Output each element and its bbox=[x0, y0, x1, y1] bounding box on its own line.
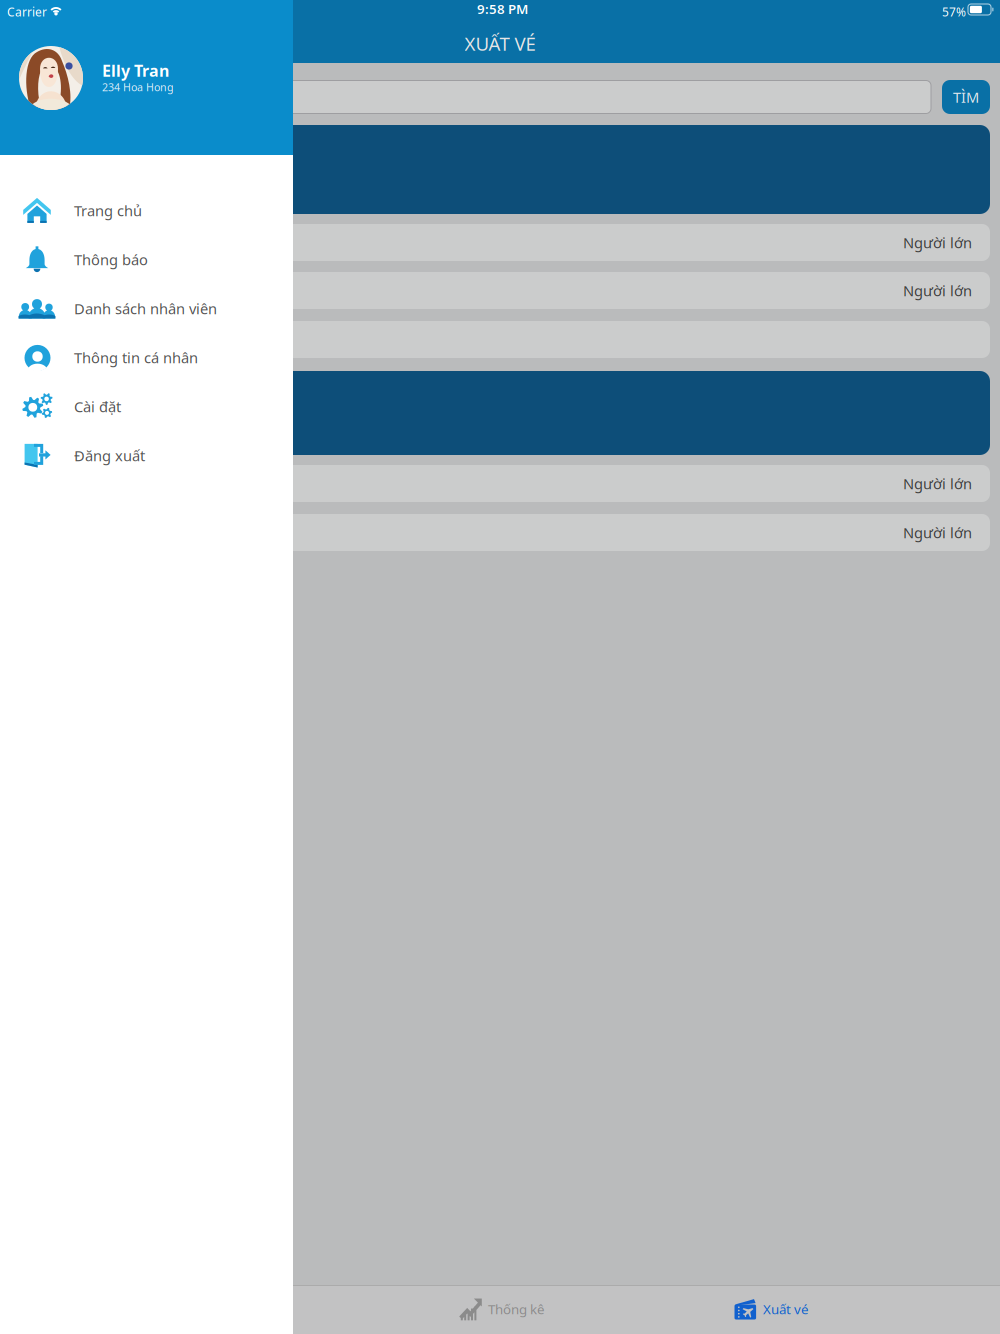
staticText: 57% bbox=[942, 4, 966, 20]
staticText: Người lớn bbox=[903, 281, 972, 300]
staticText: Đăng xuất bbox=[74, 446, 145, 465]
button[interactable]: Thông báo bbox=[0, 235, 293, 284]
staticText: Elly Tran bbox=[102, 60, 169, 81]
button[interactable]: Cài đặt bbox=[0, 382, 293, 431]
button[interactable]: Người lớn bbox=[10, 272, 990, 309]
staticText: 9:58 PM bbox=[477, 0, 528, 18]
button[interactable]: TÌM bbox=[942, 80, 990, 114]
staticText: Thông tin cá nhân bbox=[74, 348, 198, 367]
staticText: Thông báo bbox=[74, 250, 148, 269]
button[interactable]: Người lớn bbox=[10, 465, 990, 502]
staticText: XUẤT VÉ bbox=[464, 31, 535, 56]
button[interactable]: Người lớn bbox=[10, 514, 990, 551]
button[interactable]: Danh sách nhân viên bbox=[0, 284, 293, 333]
staticText: 234 Hoa Hong bbox=[102, 80, 174, 94]
staticText: Thống kê bbox=[488, 1300, 545, 1318]
staticText: Danh sách nhân viên bbox=[74, 299, 217, 318]
staticText: Cài đặt bbox=[74, 397, 121, 416]
button[interactable]: Chuyến bbox=[10, 371, 990, 455]
staticText: Người lớn bbox=[903, 233, 972, 252]
button[interactable]: Thông tin cá nhân bbox=[0, 333, 293, 382]
staticText: Xuất vé bbox=[763, 1300, 809, 1318]
staticText: Carrier bbox=[7, 4, 47, 20]
staticText: Người lớn bbox=[903, 474, 972, 493]
staticText: Trang chủ bbox=[74, 201, 142, 220]
button[interactable]: Đăng xuất bbox=[0, 431, 293, 480]
button[interactable]: Thống kê bbox=[459, 1285, 545, 1333]
staticText: Người lớn bbox=[903, 523, 972, 542]
button[interactable]: Chuyến bbox=[10, 125, 990, 214]
button[interactable]: Trang chủ bbox=[0, 186, 293, 235]
button[interactable]: Người lớn bbox=[10, 224, 990, 261]
staticText: TÌM bbox=[953, 87, 979, 107]
button[interactable]: Xuất vé bbox=[734, 1285, 809, 1333]
button[interactable] bbox=[10, 321, 990, 358]
